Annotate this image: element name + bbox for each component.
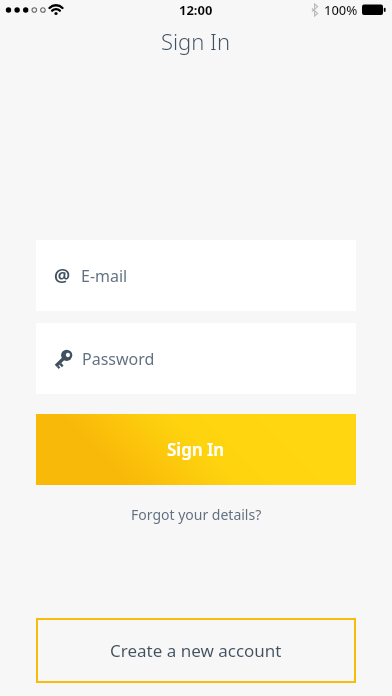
staticText: Create a new account xyxy=(110,639,282,662)
button[interactable]: @ xyxy=(36,240,356,311)
button[interactable]: Forgot your details? xyxy=(131,505,262,524)
staticText: Forgot your details? xyxy=(131,505,262,524)
staticText: @ xyxy=(54,263,71,288)
staticText: E-mail xyxy=(81,265,128,287)
staticText: 100% xyxy=(324,1,358,19)
staticText: Password xyxy=(82,348,155,370)
staticText: 12:00 xyxy=(179,1,213,19)
button[interactable]: Create a new account xyxy=(36,618,356,683)
staticText: Sign In xyxy=(167,438,225,461)
button[interactable]: Password xyxy=(36,323,356,394)
button[interactable]: Sign In xyxy=(36,414,356,485)
staticText: Sign In xyxy=(161,26,231,56)
